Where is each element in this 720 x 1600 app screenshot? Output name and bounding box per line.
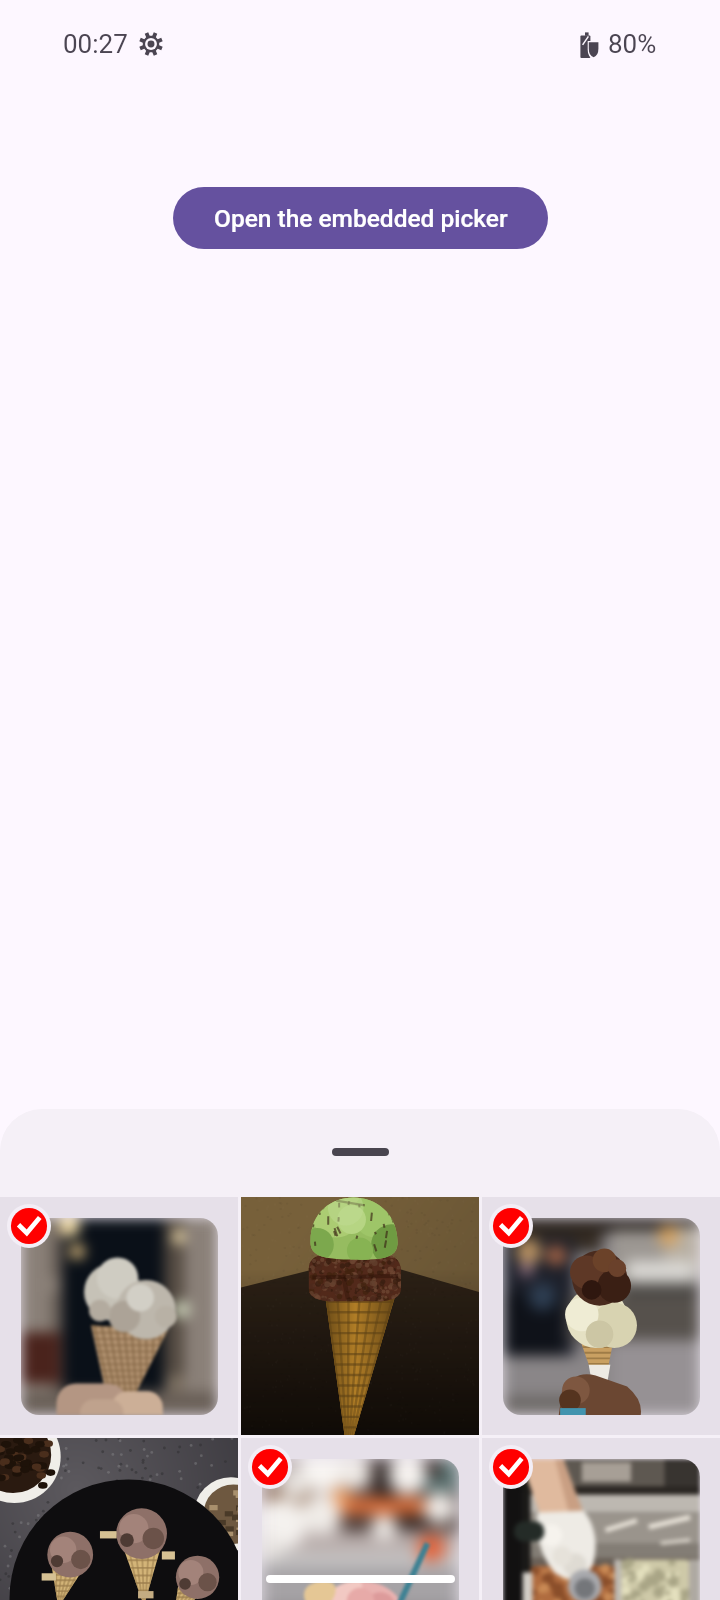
button[interactable]: Drag handle [332,1148,389,1156]
staticText: 00:27 [63,29,128,59]
staticText: 80% [608,29,657,59]
button[interactable]: Photo 4 [0,1438,238,1600]
button[interactable]: Photo 3, selected [482,1197,720,1435]
button[interactable]: Photo 2 [241,1197,479,1435]
button[interactable]: Photo 6, selected [482,1438,720,1600]
button[interactable]: Photo 5, selected [241,1438,479,1600]
button[interactable]: Photo 1, selected [0,1197,238,1435]
staticText: Open the embedded picker [214,204,508,233]
button[interactable]: Settings [139,32,163,56]
button[interactable]: Open the embedded picker [173,187,548,249]
